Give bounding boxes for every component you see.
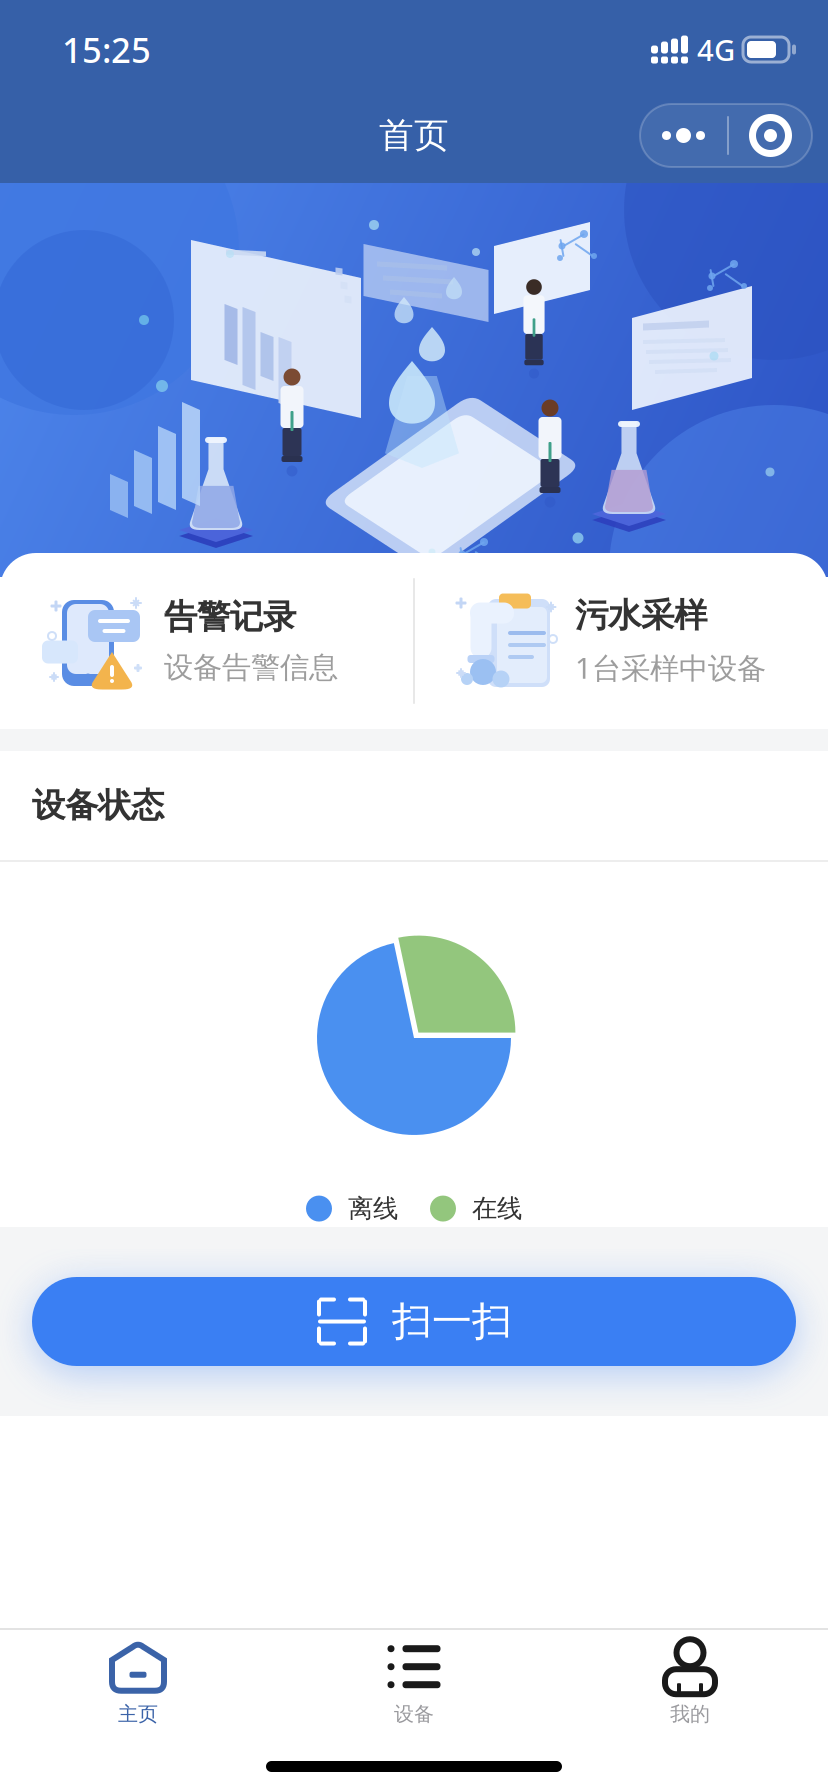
staticText: 扫一扫 bbox=[392, 1297, 512, 1346]
staticText: 我的 bbox=[670, 1702, 710, 1726]
staticText: 设备 bbox=[394, 1702, 434, 1726]
staticText: 设备告警信息 bbox=[164, 649, 338, 685]
button[interactable]: 我的 bbox=[552, 1630, 828, 1736]
button[interactable]: 设备 bbox=[276, 1630, 552, 1736]
staticText: 4G bbox=[697, 30, 735, 69]
button[interactable]: 更多 bbox=[640, 104, 812, 167]
staticText: 15:25 bbox=[62, 26, 151, 72]
staticText: 主页 bbox=[118, 1702, 158, 1726]
staticText: 离线 bbox=[348, 1193, 398, 1224]
button[interactable]: 告警记录 bbox=[0, 553, 413, 729]
staticText: 1台采样中设备 bbox=[575, 648, 766, 687]
staticText: 设备状态 bbox=[32, 785, 164, 826]
button[interactable]: 扫一扫 bbox=[0, 1277, 828, 1366]
staticText: 污水采样 bbox=[575, 595, 707, 636]
staticText: 首页 bbox=[379, 114, 449, 157]
button[interactable]: 污水采样 bbox=[415, 553, 828, 729]
staticText: 告警记录 bbox=[164, 596, 296, 637]
button[interactable]: 主页 bbox=[0, 1630, 276, 1736]
staticText: 在线 bbox=[472, 1193, 522, 1224]
